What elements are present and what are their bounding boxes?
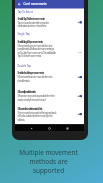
staticText: Move a card once to move it to the next … xyxy=(17,43,56,58)
staticText: Try to move the top card of the tapped s… xyxy=(17,110,56,121)
button[interactable]: Back xyxy=(15,0,23,8)
staticText: Enable Single Tap movements xyxy=(17,39,42,43)
staticText: Enable double tap movements xyxy=(17,71,43,75)
staticText: Card movements xyxy=(23,2,47,6)
staticText: Enable Tap To Select movements xyxy=(17,16,44,20)
staticText: Move to foundation stack first xyxy=(17,106,42,110)
staticText: Single Tap xyxy=(17,32,30,36)
button[interactable]: Toggle setting xyxy=(77,20,82,25)
button[interactable]: Toggle setting xyxy=(77,112,82,116)
button[interactable]: Toggle setting xyxy=(77,50,82,55)
button[interactable]: Toggle setting xyxy=(77,75,82,79)
staticText: Move all possible cards xyxy=(17,90,35,94)
staticText: Tap To Select xyxy=(17,10,33,14)
staticText: Multiple movement methods are supported xyxy=(0,148,97,175)
staticText: Move a card twice to move it to the next… xyxy=(17,75,52,82)
staticText: Double Tap xyxy=(17,64,31,68)
button[interactable]: Toggle setting xyxy=(77,94,82,98)
staticText: Tap on a card to select it, then tap the… xyxy=(17,20,49,28)
staticText: Move as many cards as possible from the … xyxy=(17,94,54,101)
